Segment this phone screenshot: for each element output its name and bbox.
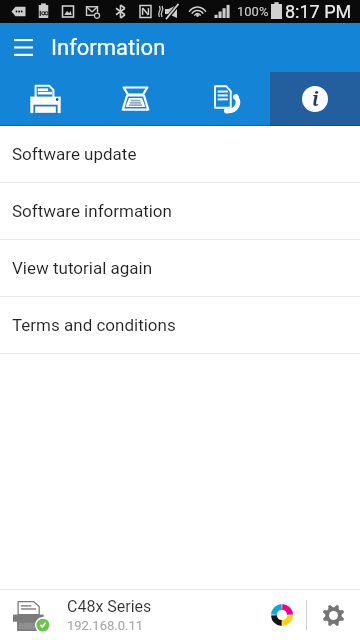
staticText: i [312, 86, 319, 112]
staticText: Information [51, 35, 166, 61]
button[interactable]: Software information [0, 183, 360, 240]
button[interactable]: Print [0, 72, 90, 125]
staticText: View tutorial again [12, 258, 153, 278]
staticText: Software information [12, 201, 172, 221]
staticText: C48x Series [67, 597, 152, 616]
staticText: 100% [237, 4, 269, 19]
staticText: Software update [12, 144, 137, 164]
button[interactable]: Software update [0, 126, 360, 183]
button[interactable]: Settings [307, 590, 360, 640]
staticText: 192.168.0.11 [67, 618, 144, 633]
button[interactable]: Fax [180, 72, 270, 125]
button[interactable]: View tutorial again [0, 240, 360, 297]
button[interactable]: C48x Series [0, 590, 258, 640]
button[interactable]: Information [270, 72, 360, 125]
button[interactable]: Supply levels [258, 590, 306, 640]
button[interactable]: Terms and conditions [0, 297, 360, 354]
staticText: 8:17 PM [285, 1, 352, 22]
staticText: Terms and conditions [12, 315, 176, 335]
button[interactable]: Open navigation drawer [0, 23, 46, 72]
button[interactable]: Scan [90, 72, 180, 125]
